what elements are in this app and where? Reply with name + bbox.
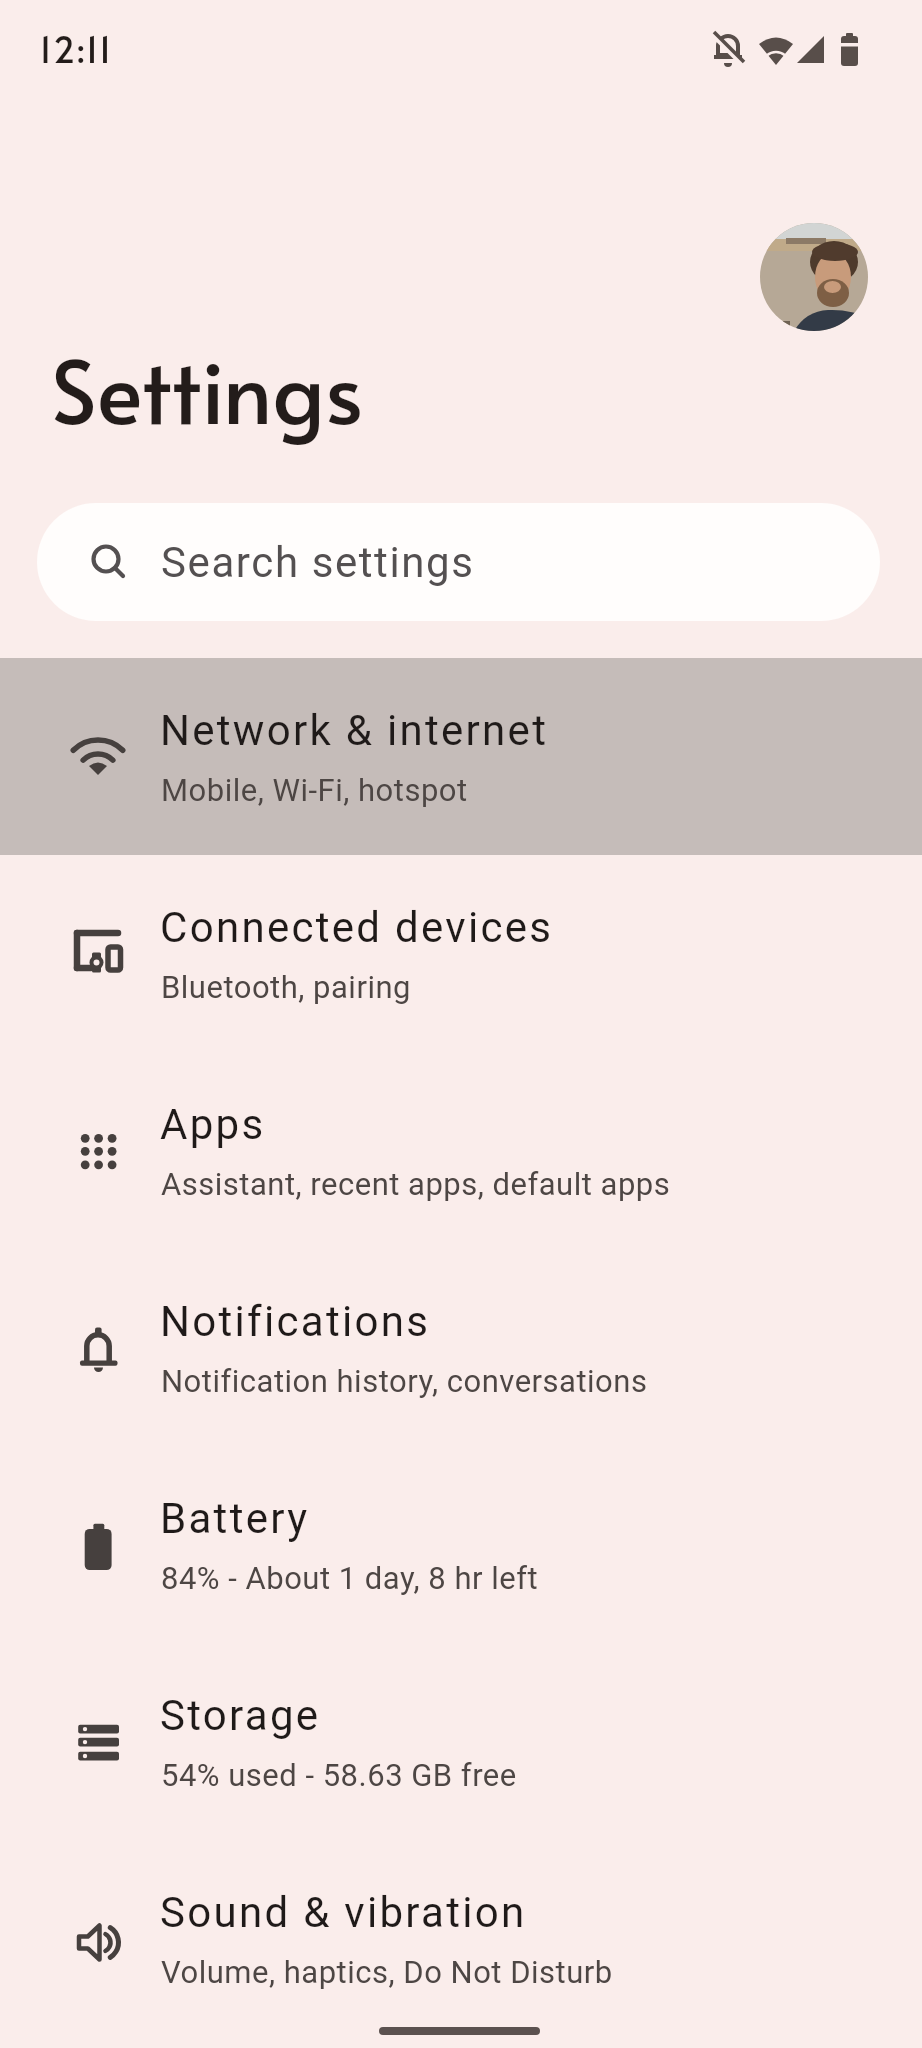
staticText: 84% - About 1 day, 8 hr left <box>161 1560 539 1596</box>
staticText: Sound & vibration <box>160 1888 527 1937</box>
staticText: Search settings <box>161 538 475 587</box>
button[interactable]: Battery <box>0 1446 922 1643</box>
staticText: Apps <box>160 1100 266 1149</box>
staticText: Storage <box>160 1691 321 1740</box>
staticText: Network & internet <box>160 706 549 755</box>
staticText: Mobile, Wi-Fi, hotspot <box>161 772 468 808</box>
staticText: Volume, haptics, Do Not Disturb <box>161 1954 613 1990</box>
button[interactable]: Sound & vibration <box>0 1840 922 2037</box>
staticText: Bluetooth, pairing <box>161 969 411 1005</box>
staticText: Notification history, conversations <box>161 1363 648 1399</box>
button[interactable]: Apps <box>0 1052 922 1249</box>
button[interactable]: Notifications <box>0 1249 922 1446</box>
button[interactable]: Connected devices <box>0 855 922 1052</box>
staticText: 54% used - 58.63 GB free <box>161 1757 517 1793</box>
button[interactable]: Network & internet <box>0 658 922 855</box>
staticText: Assistant, recent apps, default apps <box>161 1166 671 1202</box>
staticText: Connected devices <box>160 903 554 952</box>
button[interactable] <box>760 223 868 331</box>
staticText: Battery <box>160 1494 310 1543</box>
staticText: Notifications <box>160 1297 431 1346</box>
button[interactable]: Search settings <box>37 503 880 621</box>
staticText: 12:11 <box>39 24 114 72</box>
staticText: Settings <box>51 328 364 448</box>
button[interactable]: Storage <box>0 1643 922 1840</box>
